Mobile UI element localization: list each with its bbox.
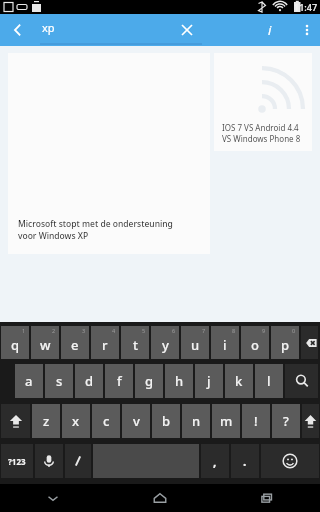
button[interactable]: Info — [254, 14, 286, 46]
button[interactable]: a — [15, 364, 43, 398]
staticText: n — [192, 412, 201, 430]
staticText: Microsoft stopt met de ondersteuning voo… — [18, 218, 188, 242]
button[interactable]: Emoji — [261, 444, 319, 478]
staticText: 5 — [142, 327, 146, 334]
button[interactable]: f — [105, 364, 133, 398]
staticText: 11:47 — [294, 1, 318, 13]
staticText: . — [243, 453, 247, 469]
staticText: 2 — [52, 327, 56, 334]
staticText: i — [268, 21, 272, 39]
button[interactable]: Recent apps — [213, 484, 320, 512]
staticText: ? — [283, 412, 289, 430]
staticText: q — [11, 336, 20, 354]
button[interactable]: k — [225, 364, 253, 398]
staticText: g — [145, 372, 154, 390]
button[interactable]: Voice input — [35, 444, 63, 478]
staticText: l — [267, 372, 271, 390]
button[interactable]: x — [62, 404, 90, 438]
button[interactable]: 3 — [61, 326, 89, 359]
staticText: v — [133, 412, 140, 430]
button[interactable]: h — [165, 364, 193, 398]
staticText: s — [56, 372, 63, 390]
staticText: 1 — [22, 327, 26, 334]
staticText: i — [223, 336, 227, 354]
staticText: e — [71, 336, 79, 354]
staticText: IOS 7 VS Android 4.4 VS Windows Phone 8 — [222, 122, 307, 144]
button[interactable]: ! — [242, 404, 270, 438]
button[interactable]: Clear — [172, 15, 202, 45]
button[interactable]: 1 — [1, 326, 29, 359]
staticText: ?123 — [8, 456, 26, 467]
staticText: 7 — [202, 327, 206, 334]
button[interactable]: 5 — [121, 326, 149, 359]
button[interactable]: 8 — [211, 326, 239, 359]
staticText: 8 — [232, 327, 236, 334]
button[interactable]: Microsoft stopt met de ondersteuning voo… — [8, 53, 210, 254]
staticText: k — [235, 372, 243, 390]
staticText: x — [72, 412, 80, 430]
staticText: o — [251, 336, 259, 354]
staticText: 3 — [82, 327, 86, 334]
staticText: d — [85, 372, 94, 390]
button[interactable]: Search — [285, 364, 318, 398]
staticText: f — [117, 372, 122, 390]
button[interactable]: ?123 — [1, 444, 33, 478]
button[interactable]: s — [45, 364, 73, 398]
button[interactable]: 7 — [181, 326, 209, 359]
staticText: c — [103, 412, 110, 430]
button[interactable]: n — [182, 404, 210, 438]
button[interactable]: Slash — [65, 444, 91, 478]
staticText: b — [162, 412, 171, 430]
staticText: t — [133, 336, 138, 354]
button[interactable]: xp — [40, 14, 202, 46]
staticText: 0 — [292, 327, 296, 334]
button[interactable]: Shift — [302, 404, 319, 438]
button[interactable]: 9 — [241, 326, 269, 359]
staticText: a — [25, 372, 33, 390]
button[interactable]: More options — [294, 14, 320, 46]
staticText: r — [102, 336, 108, 354]
button[interactable]: Shift — [1, 404, 30, 438]
staticText: 9 — [262, 327, 266, 334]
button[interactable]: . — [231, 444, 259, 478]
button[interactable]: , — [201, 444, 229, 478]
button[interactable]: l — [255, 364, 283, 398]
button[interactable]: ? — [272, 404, 300, 438]
staticText: y — [162, 336, 169, 354]
button[interactable]: z — [32, 404, 60, 438]
staticText: , — [213, 453, 217, 469]
button[interactable]: v — [122, 404, 150, 438]
staticText: 4 — [112, 327, 116, 334]
button[interactable]: Home — [106, 484, 213, 512]
button[interactable]: Backspace — [301, 326, 318, 359]
staticText: p — [281, 336, 290, 354]
staticText: w — [40, 336, 51, 354]
staticText: j — [207, 372, 211, 390]
staticText: ! — [254, 412, 258, 430]
button[interactable]: c — [92, 404, 120, 438]
button[interactable]: 2 — [31, 326, 59, 359]
button[interactable]: Hide keyboard — [0, 484, 106, 512]
button[interactable]: j — [195, 364, 223, 398]
staticText: u — [191, 336, 200, 354]
staticText: z — [43, 412, 50, 430]
button[interactable]: m — [212, 404, 240, 438]
staticText: m — [220, 412, 233, 430]
button[interactable]: 4 — [91, 326, 119, 359]
button[interactable]: 6 — [151, 326, 179, 359]
staticText: xp — [42, 20, 55, 35]
button[interactable]: b — [152, 404, 180, 438]
staticText: h — [175, 372, 184, 390]
button[interactable]: Back — [0, 14, 36, 46]
button[interactable]: 0 — [271, 326, 299, 359]
staticText: 6 — [172, 327, 176, 334]
button[interactable]: d — [75, 364, 103, 398]
button[interactable]: g — [135, 364, 163, 398]
button[interactable]: IOS 7 VS Android 4.4 VS Windows Phone 8 — [214, 53, 312, 151]
